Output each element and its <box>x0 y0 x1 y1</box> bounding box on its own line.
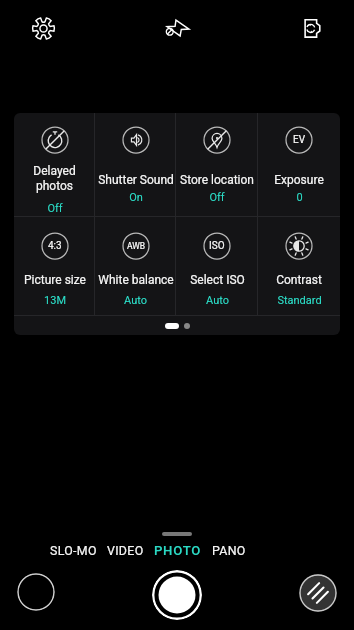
staticText: Picture size <box>24 273 86 287</box>
staticText: VIDEO <box>107 543 144 558</box>
staticText: Auto <box>206 294 229 307</box>
button[interactable]: EV <box>258 113 340 216</box>
staticText: SLO-MO <box>50 543 97 558</box>
staticText: On <box>129 191 143 204</box>
staticText: AWB <box>127 241 146 251</box>
button[interactable]: 4:3 <box>14 217 95 316</box>
staticText: Store location <box>180 173 254 187</box>
staticText: Contrast <box>276 273 322 287</box>
staticText: 13M <box>44 294 66 307</box>
staticText: Select ISO <box>190 273 245 287</box>
staticText: EV <box>293 134 306 146</box>
staticText: ISO <box>209 240 225 252</box>
staticText: PANO <box>212 543 246 558</box>
button[interactable]: ISO <box>176 217 258 316</box>
button[interactable]: PHOTO <box>147 540 207 560</box>
staticText: White balance <box>98 273 174 287</box>
staticText: PHOTO <box>154 543 201 558</box>
staticText: Standard <box>277 294 322 307</box>
button[interactable]: Flash off <box>158 9 196 47</box>
button[interactable]: SLO-MO <box>43 540 103 560</box>
button[interactable]: PANO <box>199 540 259 560</box>
button[interactable]: Contrast <box>258 217 340 316</box>
button[interactable]: Gallery <box>17 573 55 611</box>
staticText: Off <box>209 191 225 204</box>
button[interactable]: Filters <box>299 574 337 612</box>
button[interactable]: Store location <box>176 113 258 216</box>
staticText: 0 <box>296 191 303 204</box>
button[interactable]: Settings <box>24 9 62 47</box>
staticText: Shutter Sound <box>98 173 174 187</box>
staticText: Delayed photos <box>33 164 76 193</box>
staticText: Auto <box>124 294 147 307</box>
staticText: Off <box>47 202 63 215</box>
button[interactable]: VIDEO <box>95 540 155 560</box>
button[interactable]: HDR <box>293 9 331 47</box>
button[interactable]: Delayed photos <box>14 113 95 216</box>
staticText: Exposure <box>274 173 324 187</box>
button[interactable]: Shutter Sound <box>95 113 176 216</box>
staticText: 4:3 <box>48 240 62 252</box>
button[interactable]: Take photo <box>152 570 202 620</box>
button[interactable]: AWB <box>95 217 176 316</box>
